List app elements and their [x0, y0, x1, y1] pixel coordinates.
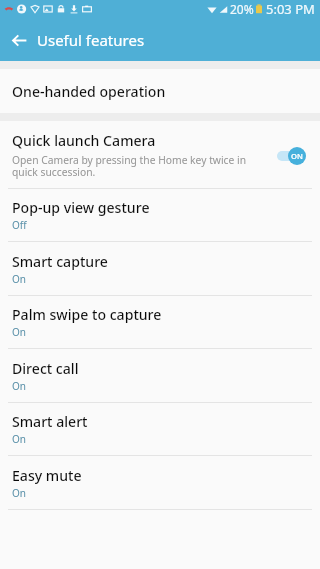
staticText: 20%	[230, 1, 254, 17]
staticText: 5:03 PM	[266, 0, 315, 18]
button[interactable]: Palm swipe to capture	[0, 296, 320, 349]
staticText: On	[12, 272, 26, 286]
button[interactable]: Easy mute	[0, 456, 320, 510]
staticText: Smart capture	[12, 252, 108, 271]
staticText: ON	[291, 151, 303, 161]
staticText: Open Camera by pressing the Home key twi…	[12, 153, 258, 179]
staticText: On	[12, 325, 26, 339]
button[interactable]: One-handed operation	[0, 69, 320, 113]
staticText: On	[12, 486, 26, 500]
button[interactable]: Quick launch Camera, on	[272, 142, 312, 168]
staticText: Smart alert	[12, 412, 88, 431]
button[interactable]: Smart alert	[0, 403, 320, 456]
staticText: Easy mute	[12, 466, 82, 485]
button[interactable]: Direct call	[0, 349, 320, 403]
staticText: Pop-up view gesture	[12, 198, 150, 217]
staticText: Off	[12, 218, 27, 232]
staticText: Direct call	[12, 359, 79, 378]
staticText: Quick launch Camera	[12, 131, 156, 150]
button[interactable]: Navigate up	[5, 26, 33, 54]
staticText: Useful features	[37, 30, 145, 50]
staticText: On	[12, 432, 26, 446]
button[interactable]: Pop-up view gesture	[0, 189, 320, 242]
staticText: On	[12, 379, 26, 393]
staticText: One-handed operation	[12, 82, 166, 101]
button[interactable]: Quick launch Camera	[0, 121, 320, 189]
staticText: Palm swipe to capture	[12, 305, 162, 324]
button[interactable]: Smart capture	[0, 242, 320, 296]
